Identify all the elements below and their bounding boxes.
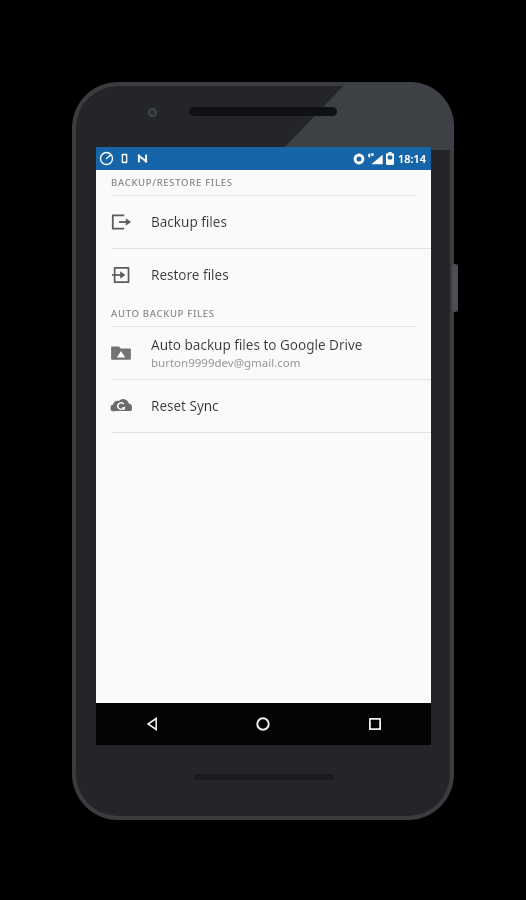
staticText: BACKUP/RESTORE FILES [111, 176, 233, 189]
button[interactable]: Recent apps [319, 703, 431, 745]
staticText: Auto backup files to Google Drive [151, 336, 363, 354]
staticText: 18:14 [398, 151, 427, 166]
staticText: Restore files [151, 266, 229, 284]
button[interactable]: Home [207, 703, 319, 745]
button[interactable]: Restore files [96, 249, 431, 301]
staticText: Reset Sync [151, 397, 219, 415]
button[interactable]: Reset Sync [96, 380, 431, 432]
staticText: Backup files [151, 213, 227, 231]
staticText: burton9999dev@gmail.com [151, 355, 301, 371]
button[interactable]: Back [96, 703, 207, 745]
staticText: AUTO BACKUP FILES [111, 307, 215, 320]
button[interactable]: Backup files [96, 196, 431, 248]
button[interactable]: Auto backup files to Google Drive [96, 327, 431, 379]
